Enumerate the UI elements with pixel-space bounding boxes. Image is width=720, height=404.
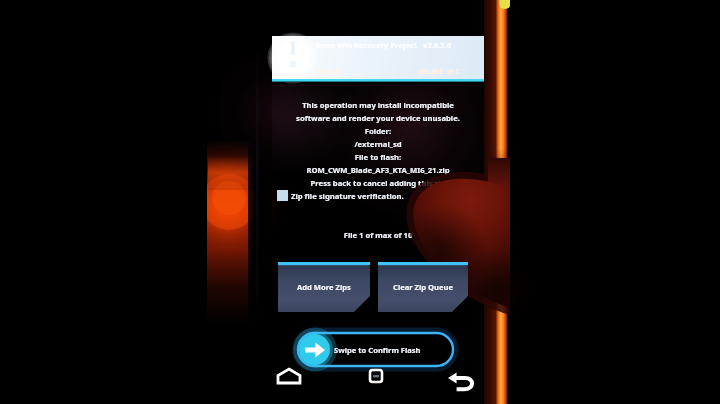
staticText: This operation may install incompatible — [272, 100, 484, 110]
staticText: File 1 of max of 10 — [272, 230, 484, 240]
button[interactable]: Swipe to Confirm Flash — [298, 333, 453, 366]
staticText: Add More Zips — [297, 282, 351, 292]
staticText: software and render your device unusable… — [272, 113, 484, 123]
staticText: /external_sd — [272, 139, 484, 149]
staticText: ONLINE 39 C — [418, 67, 460, 76]
button[interactable]: Home — [274, 364, 304, 388]
button[interactable]: Back — [444, 365, 478, 399]
staticText: Clear Zip Queue — [393, 282, 453, 292]
staticText: ROM_CWM_Blade_AF3_KTA_MI6_21.zip — [272, 165, 484, 175]
button[interactable]: Zip file signature verification. — [277, 190, 404, 201]
staticText: Press back to cancel adding this zip — [272, 178, 484, 188]
button[interactable]: Recent apps — [363, 364, 389, 388]
staticText: File to flash: — [272, 152, 484, 162]
staticText: 500 MB — [316, 67, 339, 76]
staticText: Swipe to Confirm Flash — [334, 345, 421, 355]
button[interactable]: Add More Zips — [278, 262, 370, 312]
staticText: Folder: — [272, 126, 484, 136]
staticText: Team Win Recovery Project v2.6.3.0 — [315, 40, 452, 50]
staticText: Zip file signature verification. — [291, 191, 404, 201]
button[interactable]: Clear Zip Queue — [378, 262, 468, 312]
